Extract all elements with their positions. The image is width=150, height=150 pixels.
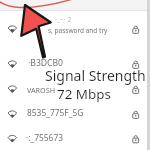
staticText: ·:_755673 [26,132,64,143]
staticText: VAROSH [27,85,55,95]
button[interactable]: 755673 network [0,122,150,150]
staticText: Signal Strength [45,66,146,85]
staticText: ·_··· 2 [55,15,72,25]
button[interactable]: VAROSH network [0,72,150,97]
staticText: 8535_775F_5G [27,107,84,118]
staticText: ·B3DCB0 [28,57,64,69]
button[interactable]: Network, incorrect password [0,11,150,47]
staticText: s, password and try [48,26,108,35]
button[interactable]: B3DCB0 network [0,47,150,72]
staticText: 72 Mbps [57,85,111,103]
button[interactable]: 8535_775F_5G network [0,97,150,122]
